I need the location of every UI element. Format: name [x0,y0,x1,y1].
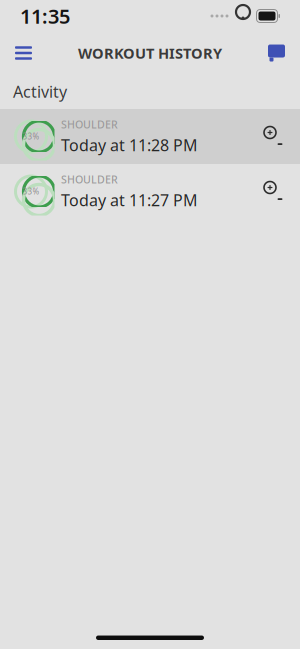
staticText: WORKOUT HISTORY [78,43,222,63]
button[interactable]: 33% [0,164,300,219]
staticText: Today at 11:27 PM [61,189,198,211]
button[interactable]: Messages [255,31,298,74]
staticText: Today at 11:28 PM [61,134,198,156]
staticText: 11:35 [20,3,70,29]
staticText: Activity [13,81,67,102]
staticText: SHOULDER [61,117,118,131]
button[interactable]: 33% [0,109,300,164]
button[interactable]: Menu [2,33,45,73]
staticText: SHOULDER [61,172,118,186]
staticText: 33% [22,131,39,142]
staticText: 33% [22,186,39,197]
